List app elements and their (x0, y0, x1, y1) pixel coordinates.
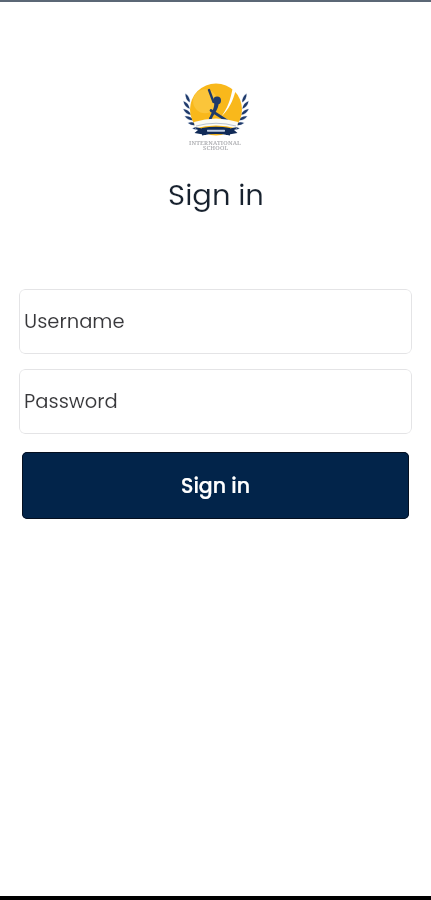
staticText: Sign in (181, 471, 251, 500)
staticText: Password (24, 388, 118, 415)
button[interactable]: Password (19, 369, 412, 434)
button[interactable]: Sign in (22, 452, 409, 519)
staticText: SCHOOL (203, 144, 229, 152)
button[interactable]: Username (19, 289, 412, 354)
staticText: Sign in (168, 175, 264, 216)
staticText: INTERNATIONAL (189, 139, 242, 147)
staticText: Username (24, 308, 125, 335)
